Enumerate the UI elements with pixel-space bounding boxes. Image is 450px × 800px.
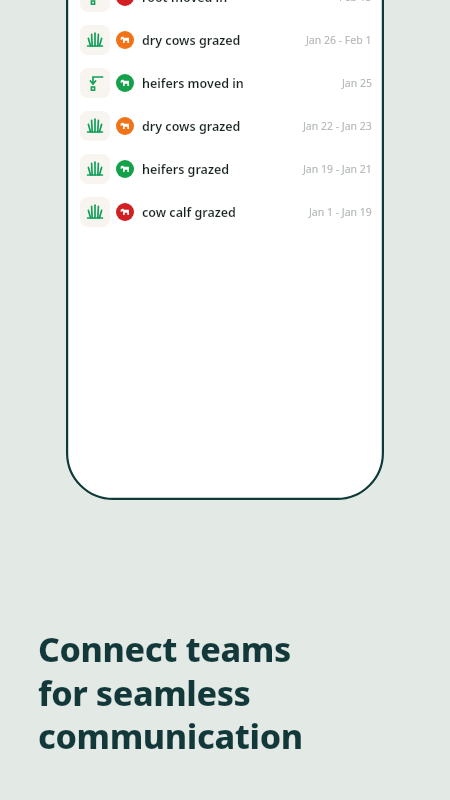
staticText: Feb 13 <box>339 0 372 4</box>
staticText: dry cows grazed <box>142 32 241 49</box>
staticText: dry cows grazed <box>142 118 241 135</box>
button[interactable]: dry cows grazed <box>80 24 372 56</box>
button[interactable]: heifers grazed <box>80 153 372 185</box>
button[interactable]: root moved in <box>80 0 372 13</box>
button[interactable]: dry cows grazed <box>80 110 372 142</box>
staticText: Jan 25 <box>342 76 372 90</box>
staticText: root moved in <box>142 0 228 6</box>
staticText: Connect teams for seamless communication <box>38 626 303 759</box>
button[interactable]: heifers moved in <box>80 67 372 99</box>
staticText: Jan 19 - Jan 21 <box>303 162 372 176</box>
staticText: Jan 1 - Jan 19 <box>309 205 372 219</box>
staticText: heifers grazed <box>142 161 230 178</box>
staticText: cow calf grazed <box>142 204 236 221</box>
button[interactable]: cow calf grazed <box>80 196 372 228</box>
staticText: Jan 22 - Jan 23 <box>303 119 372 133</box>
staticText: Jan 26 - Feb 1 <box>306 33 372 47</box>
staticText: heifers moved in <box>142 75 244 92</box>
